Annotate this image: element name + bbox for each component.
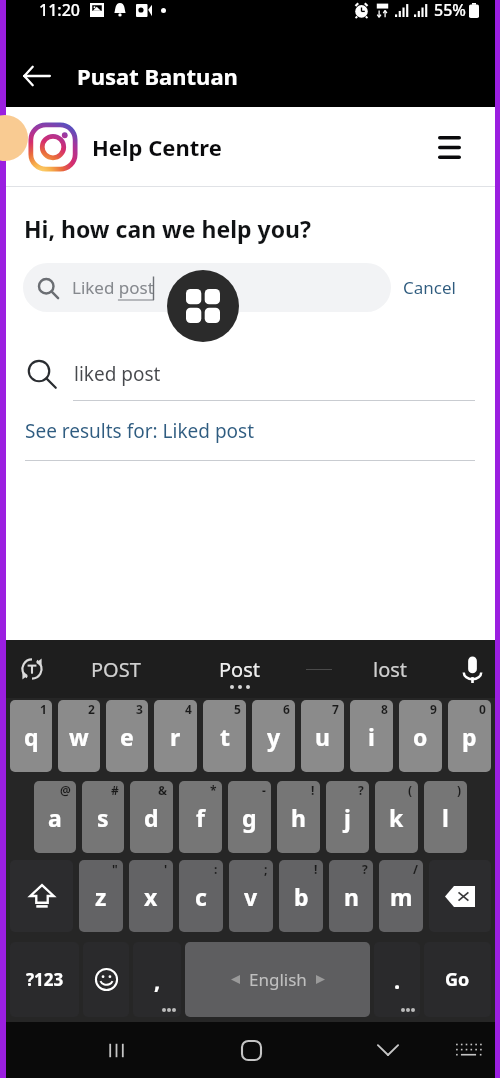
staticText: q: [24, 721, 39, 752]
button[interactable]: d: [130, 781, 173, 853]
staticText: t: [220, 721, 230, 752]
button[interactable]: English: [185, 942, 370, 1017]
button[interactable]: u: [301, 700, 344, 772]
button[interactable]: Shift: [10, 860, 73, 932]
staticText: Cancel: [403, 276, 456, 299]
button[interactable]: l: [424, 781, 467, 853]
staticText: 6: [283, 701, 290, 717]
staticText: ": [112, 861, 118, 877]
button[interactable]: q: [10, 700, 52, 772]
button[interactable]: Home: [224, 1022, 278, 1078]
staticText: @: [60, 782, 71, 798]
staticText: m: [390, 881, 413, 912]
button[interactable]: Post: [173, 640, 306, 698]
staticText: i: [368, 721, 375, 752]
button[interactable]: ,: [133, 942, 181, 1017]
button[interactable]: .: [374, 942, 420, 1017]
staticText: !: [314, 861, 318, 877]
staticText: English: [249, 968, 307, 991]
button[interactable]: p: [448, 700, 491, 772]
staticText: *: [210, 782, 217, 798]
staticText: :: [214, 861, 218, 877]
button[interactable]: t: [203, 700, 246, 772]
button[interactable]: v: [229, 860, 273, 932]
staticText: o: [413, 721, 428, 752]
staticText: lost: [373, 656, 408, 683]
staticText: Liked post: [72, 276, 154, 299]
staticText: k: [389, 802, 404, 833]
staticText: ?: [358, 782, 364, 798]
button[interactable]: Emoji: [83, 942, 129, 1017]
staticText: ;: [264, 861, 268, 877]
button[interactable]: i: [350, 700, 393, 772]
button[interactable]: Backspace: [429, 860, 491, 932]
button[interactable]: ?123: [10, 942, 79, 1017]
button[interactable]: Recents: [89, 1022, 143, 1078]
button[interactable]: POST: [58, 640, 173, 698]
staticText: &: [158, 782, 168, 798]
button[interactable]: g: [228, 781, 271, 853]
staticText: Pusat Bantuan: [77, 61, 238, 91]
button[interactable]: n: [329, 860, 373, 932]
button[interactable]: a: [34, 781, 76, 853]
staticText: u: [315, 721, 330, 752]
staticText: 0: [479, 701, 486, 717]
staticText: 8: [381, 701, 388, 717]
staticText: z: [95, 881, 107, 912]
button[interactable]: Back: [14, 54, 58, 98]
button[interactable]: h: [277, 781, 320, 853]
staticText: l: [442, 802, 449, 833]
staticText: p: [462, 721, 477, 752]
button[interactable]: j: [326, 781, 369, 853]
staticText: Hi, how can we help you?: [24, 213, 311, 244]
staticText: a: [48, 802, 62, 833]
staticText: 7: [332, 701, 339, 717]
button[interactable]: e: [106, 700, 148, 772]
button[interactable]: Voice input: [449, 640, 495, 698]
staticText: !: [311, 782, 315, 798]
staticText: f: [196, 802, 205, 833]
button[interactable]: o: [399, 700, 442, 772]
button[interactable]: y: [252, 700, 295, 772]
button[interactable]: Hide keyboard: [361, 1022, 415, 1078]
button[interactable]: See results for: Liked post: [6, 413, 495, 449]
button[interactable]: Cancel: [399, 268, 460, 307]
staticText: h: [291, 802, 306, 833]
staticText: ,: [154, 965, 161, 995]
button[interactable]: Menu: [431, 129, 467, 165]
button[interactable]: w: [58, 700, 100, 772]
button[interactable]: Translate: [6, 640, 58, 698]
button[interactable]: m: [379, 860, 423, 932]
button[interactable]: Liked post: [23, 263, 391, 312]
staticText: c: [195, 881, 207, 912]
button[interactable]: x: [129, 860, 173, 932]
staticText: (: [408, 782, 413, 798]
button[interactable]: Keyboard: [441, 1022, 495, 1078]
button[interactable]: lost: [332, 640, 449, 698]
staticText: d: [144, 802, 159, 833]
staticText: Go: [445, 967, 470, 992]
staticText: liked post: [74, 361, 161, 387]
staticText: 2: [88, 701, 95, 717]
button[interactable]: z: [79, 860, 123, 932]
staticText: n: [344, 881, 359, 912]
staticText: Post: [219, 656, 260, 683]
button[interactable]: b: [279, 860, 323, 932]
staticText: 1: [40, 701, 47, 717]
button[interactable]: k: [375, 781, 418, 853]
staticText: j: [344, 802, 351, 833]
button[interactable]: liked post: [6, 358, 495, 389]
staticText: 11:20: [39, 0, 80, 21]
button[interactable]: r: [154, 700, 197, 772]
staticText: y: [267, 721, 281, 752]
button[interactable]: Apps: [167, 270, 239, 342]
button[interactable]: c: [179, 860, 223, 932]
button[interactable]: s: [82, 781, 124, 853]
staticText: w: [69, 721, 89, 752]
staticText: 5: [234, 701, 241, 717]
staticText: b: [294, 881, 309, 912]
staticText: ): [457, 782, 462, 798]
button[interactable]: f: [179, 781, 222, 853]
staticText: 9: [430, 701, 437, 717]
button[interactable]: Go: [424, 942, 491, 1017]
